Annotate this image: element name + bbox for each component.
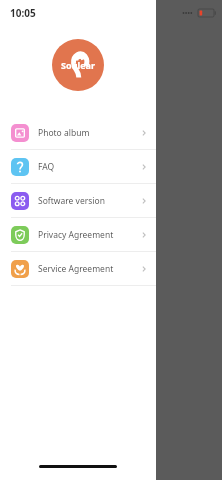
staticText: 10:05	[10, 6, 36, 20]
staticText: Photo album	[38, 127, 90, 139]
staticText: Privacy Agreement	[38, 229, 114, 241]
button[interactable]: FAQ	[0, 150, 156, 183]
button[interactable]: Service Agreement	[0, 252, 156, 285]
staticText: Software version	[38, 195, 105, 207]
staticText: FAQ	[38, 161, 55, 173]
button[interactable]: Photo album	[0, 116, 156, 149]
button[interactable]: Privacy Agreement	[0, 218, 156, 251]
button[interactable]: Software version	[0, 184, 156, 217]
staticText: Soulear	[61, 59, 95, 71]
staticText: Service Agreement	[38, 263, 114, 275]
